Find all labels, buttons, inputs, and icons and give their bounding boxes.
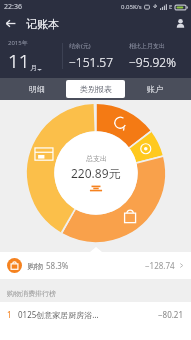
staticText: 1 xyxy=(7,309,12,320)
staticText: 记账本 xyxy=(26,17,59,31)
staticText: 购物 xyxy=(27,261,43,271)
button[interactable]: Account xyxy=(170,13,191,34)
button[interactable]: 账户 xyxy=(125,80,184,98)
staticText: 类别报表 xyxy=(80,84,112,94)
staticText: −80.21 xyxy=(158,309,184,320)
staticText: 购物消费排行榜 xyxy=(7,289,56,298)
button[interactable]: 明细 xyxy=(7,80,66,98)
staticText: 结余(元) xyxy=(69,42,91,50)
button[interactable]: 1 xyxy=(0,302,191,326)
button[interactable]: 类别报表 xyxy=(66,80,125,98)
staticText: 总支出 xyxy=(86,154,107,163)
staticText: 0.05K/s xyxy=(121,3,142,11)
staticText: 2015年 xyxy=(8,39,28,47)
staticText: 相比上月支出 xyxy=(129,42,165,50)
button[interactable]: Back xyxy=(0,13,21,34)
staticText: 58.3% xyxy=(46,260,69,271)
staticText: −128.74 xyxy=(145,260,175,271)
button[interactable]: 2015年 xyxy=(0,39,62,74)
staticText: E xyxy=(169,3,173,11)
staticText: 0125创意家居厨房浴… xyxy=(18,309,99,320)
staticText: 220.89元 xyxy=(71,165,121,181)
staticText: 月 xyxy=(30,63,37,72)
staticText: 账户 xyxy=(147,84,163,94)
staticText: 明细 xyxy=(29,84,45,94)
staticText: 22:36 xyxy=(4,2,22,12)
staticText: 11 xyxy=(8,48,30,74)
button[interactable]: 购物 xyxy=(0,252,191,279)
button[interactable]: 总支出 xyxy=(27,104,165,242)
staticText: −95.92% xyxy=(129,54,176,70)
staticText: −151.57 xyxy=(69,54,114,70)
